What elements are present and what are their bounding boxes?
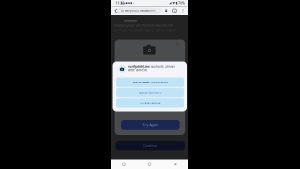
staticText: Autoriser pendant la visite du site bbox=[133, 81, 168, 84]
button[interactable]: Home bbox=[137, 159, 162, 169]
button[interactable]: Autoriser pendant la visite du site bbox=[116, 77, 184, 87]
staticText: 11:32 bbox=[115, 1, 124, 5]
staticText: verify.didit.me/session/s bbox=[125, 9, 155, 12]
staticText: verify.didit.me souhaite utiliser votre … bbox=[128, 65, 175, 72]
button[interactable]: More options bbox=[180, 8, 185, 14]
staticText: 6 bbox=[174, 9, 175, 12]
staticText: Choose your verification document bbox=[114, 22, 173, 28]
button[interactable]: verify.didit.me/session/s bbox=[117, 8, 162, 14]
button[interactable]: Downloads bbox=[163, 8, 169, 14]
staticText: Try Again bbox=[142, 122, 158, 127]
staticText: Ne jamais autoriser bbox=[140, 101, 161, 104]
button[interactable]: Home bbox=[114, 8, 120, 14]
button[interactable]: Try Again bbox=[121, 120, 180, 130]
button[interactable]: Autoriser cette fois-ci bbox=[116, 88, 184, 97]
staticText: Autoriser cette fois-ci bbox=[139, 91, 162, 94]
staticText: Continue bbox=[143, 143, 157, 148]
button[interactable]: Switch tabs bbox=[171, 8, 177, 14]
button[interactable]: Ne jamais autoriser bbox=[116, 98, 184, 107]
button[interactable]: Continue bbox=[115, 141, 185, 150]
button[interactable]: Recent apps bbox=[111, 159, 137, 169]
button[interactable]: Close bbox=[176, 42, 179, 45]
staticText: 70% bbox=[178, 1, 185, 5]
button[interactable]: Back bbox=[162, 159, 188, 169]
